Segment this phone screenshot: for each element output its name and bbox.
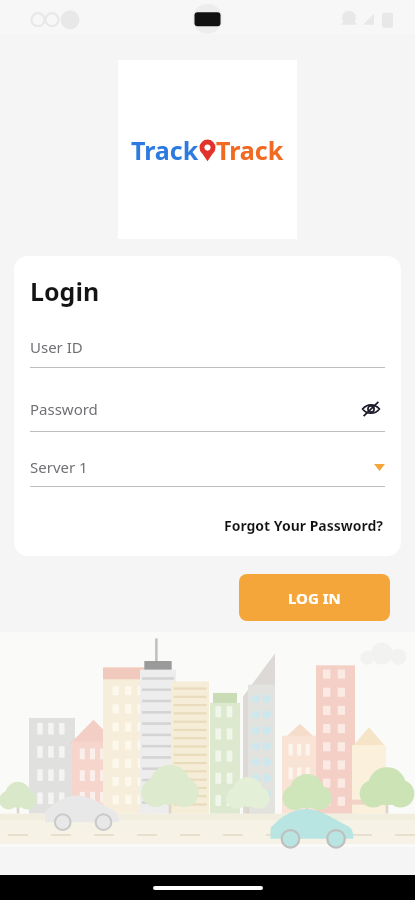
- staticText: Server 1: [30, 457, 374, 477]
- button[interactable]: Password: [30, 395, 385, 432]
- staticText: Track: [216, 133, 284, 167]
- staticText: Login: [30, 274, 100, 308]
- staticText: Track: [131, 133, 199, 167]
- button[interactable]: Forgot Your Password?: [221, 513, 385, 538]
- button[interactable]: LOG IN: [239, 574, 390, 621]
- button[interactable]: Show password: [357, 395, 385, 423]
- button[interactable]: User ID: [30, 337, 385, 368]
- staticText: Forgot Your Password?: [223, 516, 383, 535]
- button[interactable]: Server 1: [30, 457, 385, 487]
- staticText: Password: [30, 399, 357, 419]
- staticText: LOG IN: [288, 588, 341, 608]
- staticText: User ID: [30, 337, 83, 357]
